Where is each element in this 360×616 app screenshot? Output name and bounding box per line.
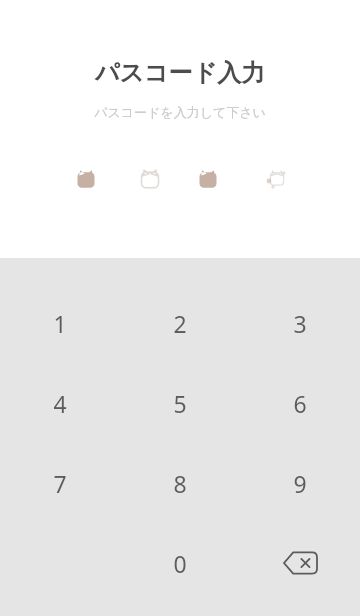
staticText: 2 (173, 308, 187, 339)
button[interactable]: 2 (120, 283, 240, 363)
staticText: パスコード入力 (0, 58, 360, 88)
staticText: 9 (293, 468, 307, 499)
staticText: 0 (173, 548, 187, 579)
staticText: 1 (53, 308, 67, 339)
staticText: 3 (293, 308, 307, 339)
staticText: 4 (53, 388, 67, 419)
button[interactable]: Delete (240, 523, 360, 603)
staticText: パスコードを入力して下さい (0, 104, 360, 120)
staticText: 6 (293, 388, 307, 419)
button[interactable]: 9 (240, 443, 360, 523)
staticText: 8 (173, 468, 187, 499)
button[interactable]: 8 (120, 443, 240, 523)
button[interactable]: 1 (0, 283, 120, 363)
button[interactable]: 0 (120, 523, 240, 603)
button[interactable]: 4 (0, 363, 120, 443)
button[interactable]: 5 (120, 363, 240, 443)
staticText: 7 (53, 468, 67, 499)
button[interactable]: 6 (240, 363, 360, 443)
staticText: 5 (173, 388, 187, 419)
button[interactable]: 3 (240, 283, 360, 363)
button[interactable]: 7 (0, 443, 120, 523)
